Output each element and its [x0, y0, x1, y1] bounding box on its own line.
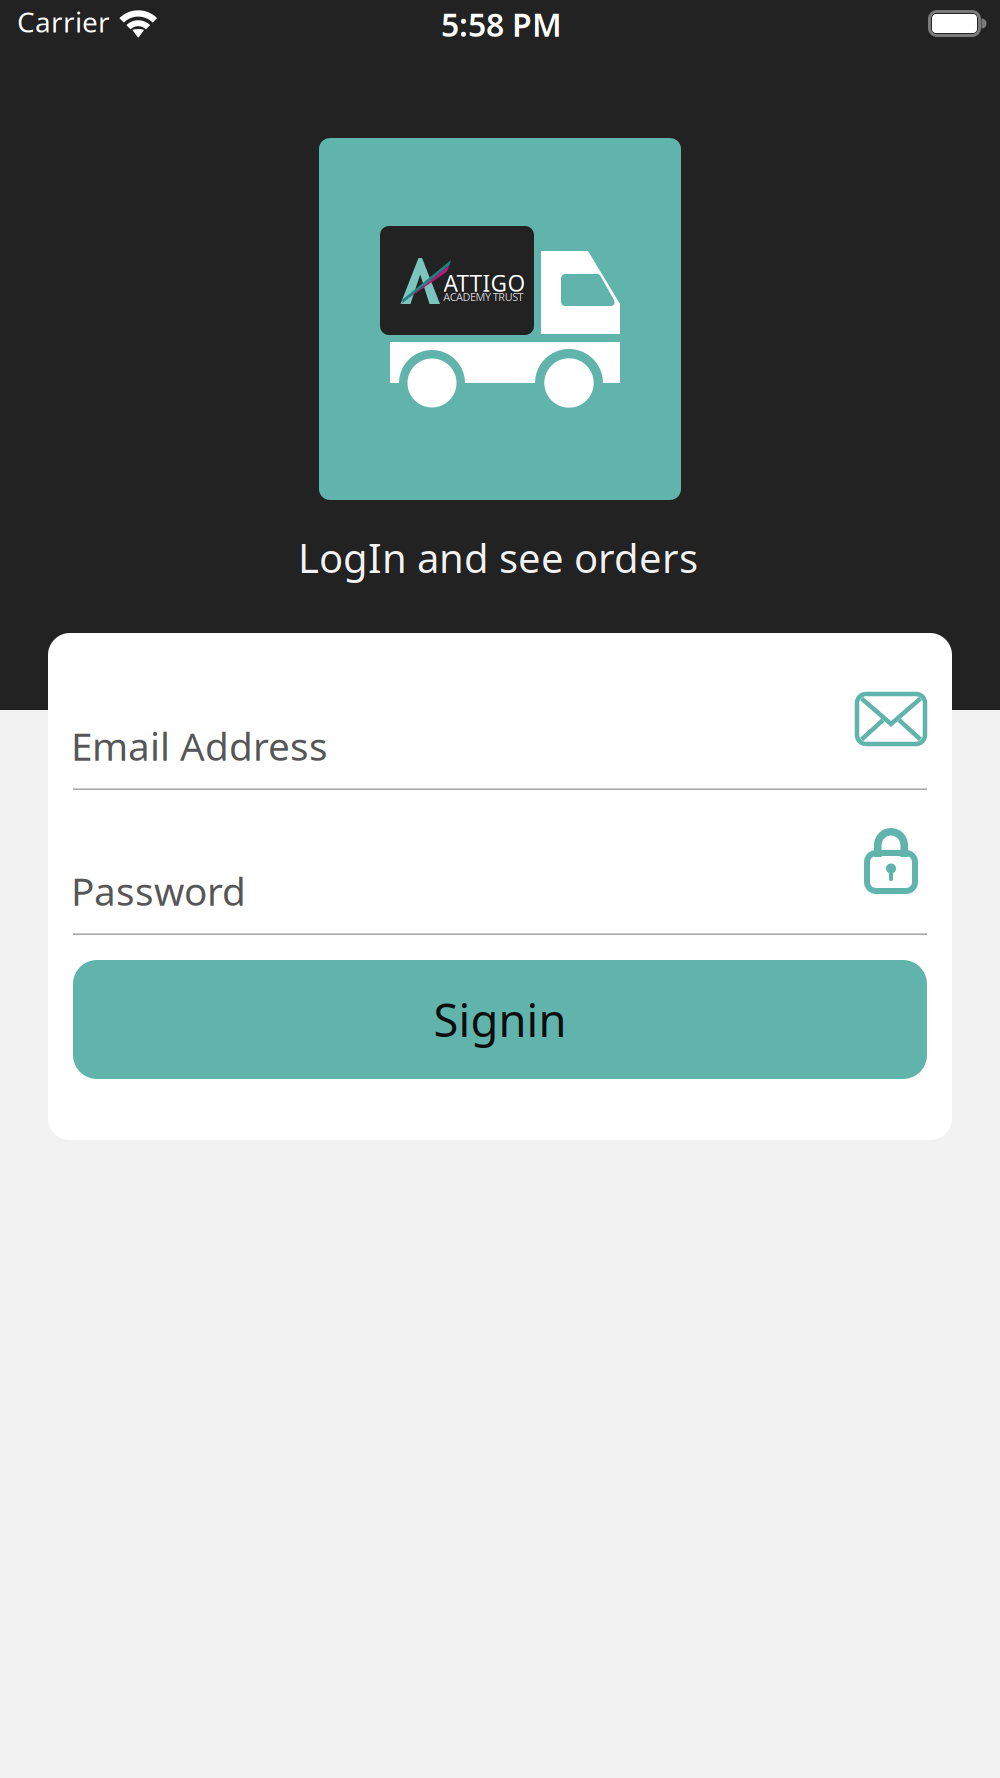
button[interactable]: Password [73, 839, 927, 935]
button[interactable]: Email Address [73, 694, 927, 790]
staticText: Email Address [71, 720, 328, 771]
staticText: LogIn and see orders [298, 531, 698, 584]
staticText: ATTIGO [444, 268, 526, 298]
staticText: 5:58 PM [441, 3, 562, 45]
staticText: ACADEMY TRUST [443, 289, 524, 304]
button[interactable]: Signin [73, 960, 927, 1079]
staticText: Carrier [17, 3, 110, 40]
staticText: Password [71, 865, 246, 916]
staticText: Signin [433, 989, 566, 1050]
